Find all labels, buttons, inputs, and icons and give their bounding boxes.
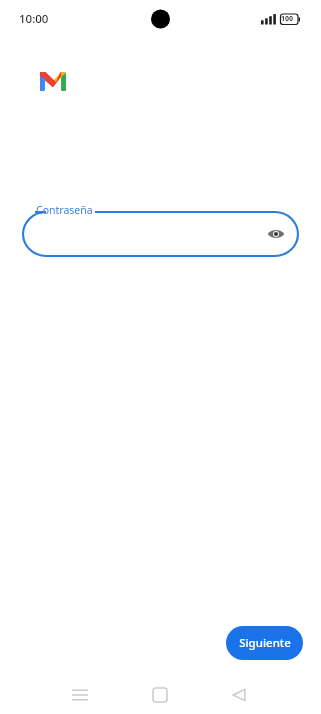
button[interactable]: Mostrar contraseña	[261, 219, 291, 249]
button[interactable]: Recientes	[60, 675, 100, 714]
staticText: Siguiente	[239, 635, 291, 651]
staticText: 100	[281, 14, 294, 24]
button[interactable]: Inicio	[140, 675, 180, 714]
button[interactable]: Siguiente	[226, 626, 303, 660]
button[interactable]: Mostrar contraseña	[22, 211, 299, 257]
other: Gmail	[40, 72, 66, 91]
button[interactable]: Atrás	[219, 675, 259, 714]
staticText: 10:00	[19, 11, 49, 27]
staticText: Contraseña	[36, 203, 93, 217]
